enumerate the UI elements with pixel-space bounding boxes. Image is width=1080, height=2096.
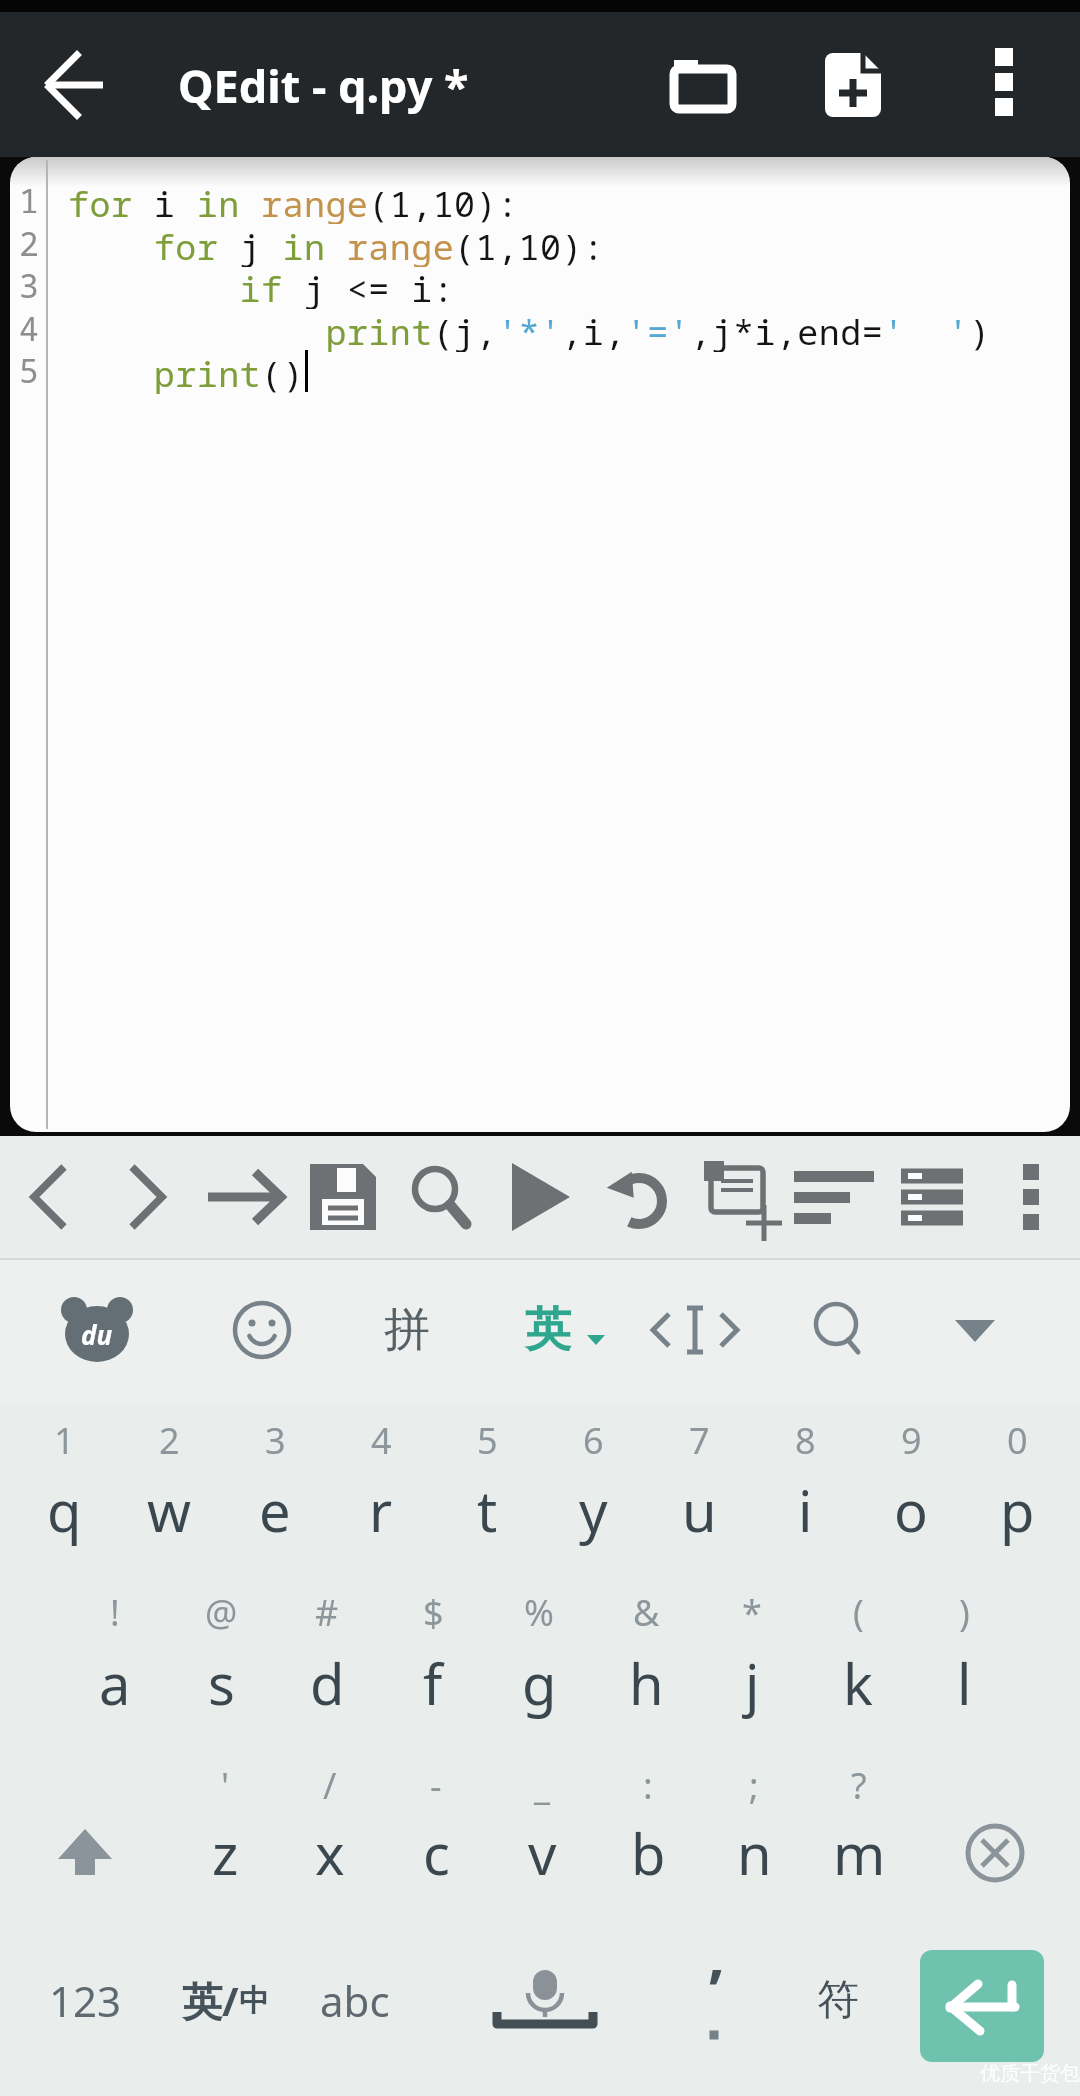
button[interactable]: p — [969, 1468, 1065, 1552]
button[interactable] — [659, 1943, 769, 2063]
button[interactable]: $ — [388, 1582, 478, 1642]
button[interactable]: q — [16, 1468, 112, 1552]
button[interactable]: s — [173, 1641, 269, 1725]
button[interactable]: - — [391, 1755, 481, 1815]
button[interactable]: ) — [919, 1582, 1009, 1642]
button[interactable]: 符 — [783, 1955, 893, 2045]
button[interactable]: j — [704, 1641, 800, 1725]
button[interactable] — [688, 1142, 784, 1252]
button[interactable]: w — [121, 1468, 217, 1552]
button[interactable] — [808, 40, 898, 130]
staticText: abc — [320, 1972, 390, 2029]
staticText: j — [745, 1645, 760, 1721]
button[interactable]: 3 — [230, 1410, 320, 1470]
button[interactable]: b — [600, 1811, 696, 1895]
button[interactable]: v — [494, 1811, 590, 1895]
button[interactable]: abc — [290, 1955, 420, 2045]
button[interactable] — [788, 1278, 888, 1378]
button[interactable] — [212, 1280, 312, 1380]
button[interactable]: 5 — [442, 1410, 532, 1470]
staticText: $ — [423, 1588, 444, 1637]
button[interactable]: # — [282, 1582, 372, 1642]
button[interactable] — [200, 1142, 290, 1252]
staticText: k — [843, 1645, 873, 1721]
button[interactable]: r — [333, 1468, 429, 1552]
button[interactable]: : — [603, 1755, 693, 1815]
button[interactable]: 拼 — [362, 1290, 452, 1370]
button[interactable]: 9 — [866, 1410, 956, 1470]
button[interactable]: c — [388, 1811, 484, 1895]
staticText: ' — [221, 1761, 230, 1810]
button[interactable]: x — [282, 1811, 378, 1895]
button[interactable] — [920, 1950, 1044, 2062]
button[interactable] — [30, 40, 120, 130]
button[interactable] — [495, 1142, 585, 1252]
button[interactable] — [930, 1285, 1020, 1375]
button[interactable]: g — [491, 1641, 587, 1725]
button[interactable]: _ — [497, 1755, 587, 1815]
button[interactable] — [658, 41, 748, 131]
button[interactable]: 英 — [508, 1290, 588, 1370]
button[interactable]: / — [285, 1755, 375, 1815]
button[interactable]: m — [811, 1811, 907, 1895]
button[interactable]: k — [810, 1641, 906, 1725]
button[interactable] — [789, 1142, 879, 1252]
button[interactable]: 英/ — [140, 1955, 310, 2045]
button[interactable] — [945, 1808, 1045, 1898]
staticText: f — [423, 1645, 443, 1721]
button[interactable]: l — [916, 1641, 1012, 1725]
button[interactable] — [460, 1945, 630, 2055]
button[interactable] — [974, 37, 1034, 127]
button[interactable] — [35, 1808, 135, 1898]
button[interactable] — [396, 1142, 486, 1252]
button[interactable]: 6 — [548, 1410, 638, 1470]
button[interactable] — [47, 1280, 147, 1380]
button[interactable] — [640, 1280, 750, 1380]
button[interactable]: & — [601, 1582, 691, 1642]
button[interactable] — [102, 1142, 192, 1252]
button[interactable]: 2 — [124, 1410, 214, 1470]
button[interactable]: h — [598, 1641, 694, 1725]
button[interactable]: a — [67, 1641, 163, 1725]
staticText: p — [1000, 1472, 1035, 1548]
button[interactable]: 8 — [760, 1410, 850, 1470]
staticText: w — [147, 1472, 192, 1548]
staticText: r — [369, 1472, 393, 1548]
button[interactable]: * — [707, 1582, 797, 1642]
button[interactable]: @ — [176, 1582, 266, 1642]
button[interactable]: ; — [709, 1755, 799, 1815]
button[interactable]: 0 — [972, 1410, 1062, 1470]
button[interactable]: i — [757, 1468, 853, 1552]
button[interactable]: ' — [180, 1755, 270, 1815]
button[interactable]: 7 — [654, 1410, 744, 1470]
button[interactable]: n — [706, 1811, 802, 1895]
button[interactable]: 123 — [25, 1955, 145, 2045]
button[interactable]: 4 — [336, 1410, 426, 1470]
staticText: z — [212, 1815, 239, 1891]
button[interactable]: y — [545, 1468, 641, 1552]
button[interactable]: t — [439, 1468, 535, 1552]
button[interactable]: u — [651, 1468, 747, 1552]
button[interactable] — [593, 1142, 683, 1252]
button[interactable] — [887, 1142, 977, 1252]
staticText: 123 — [49, 1972, 122, 2029]
button[interactable] — [1001, 1142, 1061, 1252]
button[interactable]: % — [494, 1582, 584, 1642]
button[interactable]: ( — [813, 1582, 903, 1642]
button[interactable]: ? — [814, 1755, 904, 1815]
staticText: ? — [851, 1761, 867, 1810]
staticText: h — [629, 1645, 664, 1721]
staticText: 1 — [54, 1416, 75, 1465]
staticText: 5 — [477, 1416, 498, 1465]
button[interactable]: ! — [70, 1582, 160, 1642]
button[interactable]: z — [177, 1811, 273, 1895]
staticText: i — [798, 1472, 813, 1548]
button[interactable]: o — [863, 1468, 959, 1552]
button[interactable]: 1 — [19, 1410, 109, 1470]
staticText: print(j,'*',i,'=',j*i,end=' ') — [68, 308, 991, 352]
button[interactable]: d — [279, 1641, 375, 1725]
button[interactable] — [298, 1142, 388, 1252]
button[interactable]: e — [227, 1468, 323, 1552]
button[interactable]: f — [385, 1641, 481, 1725]
button[interactable] — [4, 1142, 94, 1252]
